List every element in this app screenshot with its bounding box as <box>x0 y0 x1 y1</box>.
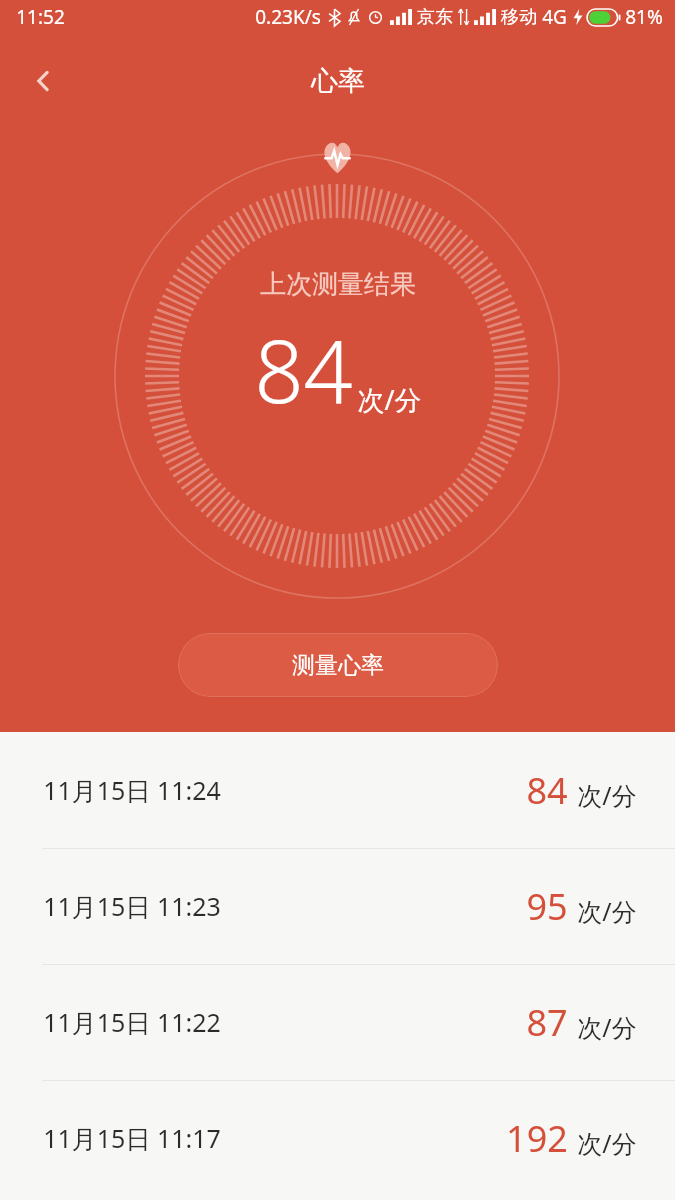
staticText: 84 <box>526 766 568 815</box>
staticText: 测量心率 <box>292 651 384 680</box>
staticText: 11月15日 11:22 <box>43 1005 221 1039</box>
staticText: 心率 <box>311 64 365 98</box>
button[interactable]: 11月15日 11:24 <box>0 732 675 848</box>
staticText: 次/分 <box>357 381 422 418</box>
button[interactable]: Back <box>14 52 72 110</box>
staticText: 192 <box>506 1114 568 1163</box>
staticText: 84 <box>254 311 353 428</box>
staticText: 11月15日 11:17 <box>43 1121 221 1155</box>
staticText: 4G <box>542 4 567 30</box>
staticText: 次/分 <box>577 1010 637 1044</box>
staticText: 81% <box>625 4 663 30</box>
staticText: 0.23K/s <box>255 4 321 30</box>
button[interactable]: 11月15日 11:22 <box>0 964 675 1080</box>
button[interactable]: 测量心率 <box>178 633 498 697</box>
staticText: 上次测量结果 <box>260 268 416 301</box>
staticText: 87 <box>526 998 568 1047</box>
staticText: 11月15日 11:24 <box>43 773 221 807</box>
staticText: 次/分 <box>577 1126 637 1160</box>
staticText: 次/分 <box>577 778 637 812</box>
staticText: 京东 <box>417 6 453 29</box>
staticText: 95 <box>526 882 568 931</box>
staticText: 次/分 <box>577 894 637 928</box>
button[interactable]: 11月15日 11:17 <box>0 1080 675 1196</box>
staticText: 11月15日 11:23 <box>43 889 221 923</box>
staticText: 11:52 <box>16 4 65 30</box>
button[interactable]: 11月15日 11:23 <box>0 848 675 964</box>
staticText: 移动 <box>501 6 537 29</box>
